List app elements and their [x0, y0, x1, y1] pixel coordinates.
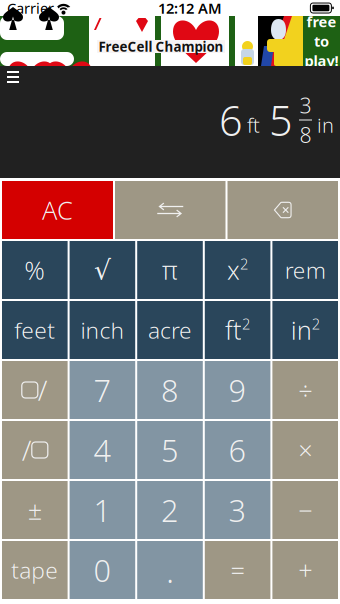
- staticText: in: [291, 313, 312, 347]
- staticText: .: [166, 548, 174, 592]
- staticText: +: [298, 553, 312, 587]
- staticText: =: [231, 553, 245, 587]
- staticText: 4: [93, 430, 111, 470]
- button[interactable]: FreeCell Champion — free to play: [0, 16, 340, 66]
- button[interactable]: Equals: [205, 541, 270, 599]
- staticText: free: [306, 12, 336, 31]
- staticText: 2: [242, 314, 250, 334]
- staticText: ft: [225, 313, 242, 347]
- staticText: 1: [93, 490, 111, 530]
- staticText: 2: [161, 490, 179, 530]
- button[interactable]: Multiply: [272, 421, 338, 479]
- button[interactable]: Menu: [0, 66, 26, 88]
- button[interactable]: Pi: [137, 241, 203, 299]
- staticText: feet: [14, 315, 55, 345]
- button[interactable]: Numerator: [2, 361, 68, 419]
- staticText: acre: [148, 315, 192, 345]
- staticText: 0: [93, 550, 111, 590]
- staticText: ±: [28, 493, 42, 527]
- button[interactable]: Swap units: [115, 181, 225, 239]
- button[interactable]: 7: [70, 361, 135, 419]
- staticText: ÷: [298, 373, 312, 407]
- button[interactable]: Square root: [70, 241, 135, 299]
- staticText: 8: [161, 370, 179, 410]
- staticText: √: [94, 255, 111, 285]
- button[interactable]: tape: [2, 541, 68, 599]
- staticText: 7: [93, 370, 111, 410]
- staticText: 6: [229, 430, 247, 470]
- staticText: 8: [299, 120, 311, 149]
- staticText: ×: [298, 433, 312, 467]
- button[interactable]: Denominator: [2, 421, 68, 479]
- button[interactable]: Plus or minus: [2, 481, 68, 539]
- staticText: 2: [240, 254, 248, 274]
- staticText: 2: [312, 314, 320, 334]
- staticText: %: [24, 253, 45, 287]
- button[interactable]: Decimal point: [137, 541, 203, 599]
- button[interactable]: 6: [205, 421, 270, 479]
- button[interactable]: in squared: [272, 301, 338, 359]
- button[interactable]: 0: [70, 541, 135, 599]
- staticText: AC: [42, 193, 73, 227]
- staticText: in: [317, 112, 334, 138]
- button[interactable]: rem: [272, 241, 338, 299]
- staticText: 3: [299, 91, 311, 119]
- button[interactable]: Divide: [272, 361, 338, 419]
- staticText: /: [38, 371, 48, 409]
- staticText: Carrier: [7, 0, 54, 18]
- button[interactable]: 5: [137, 421, 203, 479]
- button[interactable]: Minus: [272, 481, 338, 539]
- button[interactable]: 4: [70, 421, 135, 479]
- button[interactable]: Plus: [272, 541, 338, 599]
- button[interactable]: 9: [205, 361, 270, 419]
- staticText: 3: [229, 490, 247, 530]
- button[interactable]: %: [2, 241, 68, 299]
- staticText: −: [298, 493, 312, 527]
- staticText: π: [162, 253, 178, 287]
- staticText: FreeCell Champion: [98, 38, 223, 55]
- staticText: ft: [247, 112, 260, 138]
- staticText: to: [314, 31, 329, 51]
- button[interactable]: 1: [70, 481, 135, 539]
- button[interactable]: inch: [70, 301, 135, 359]
- staticText: /: [22, 431, 32, 469]
- staticText: play!: [304, 51, 338, 70]
- button[interactable]: acre: [137, 301, 203, 359]
- button[interactable]: x squared: [205, 241, 270, 299]
- staticText: rem: [285, 255, 326, 285]
- button[interactable]: AC: [2, 181, 113, 239]
- staticText: 5: [161, 430, 179, 470]
- staticText: 9: [229, 370, 247, 410]
- staticText: 12:12 AM: [158, 0, 222, 18]
- button[interactable]: 8: [137, 361, 203, 419]
- staticText: 6: [219, 93, 243, 147]
- staticText: tape: [11, 555, 58, 585]
- button[interactable]: ft squared: [205, 301, 270, 359]
- button[interactable]: Backspace: [227, 181, 338, 239]
- button[interactable]: feet: [2, 301, 68, 359]
- staticText: 5: [269, 93, 293, 147]
- staticText: inch: [80, 315, 124, 345]
- button[interactable]: 3: [205, 481, 270, 539]
- button[interactable]: 2: [137, 481, 203, 539]
- staticText: x: [227, 253, 240, 287]
